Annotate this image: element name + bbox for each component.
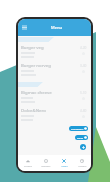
button[interactable]: Menu <box>55 155 73 171</box>
staticText: Bigmac cheese <box>21 89 52 95</box>
staticText: 3.40 <box>80 64 87 68</box>
staticText: 4.80 <box>80 109 87 113</box>
staticText: ITEM <box>77 136 84 139</box>
button[interactable]: CATEGORY <box>69 126 88 131</box>
button[interactable]: Navigation menu <box>20 23 29 32</box>
button[interactable]: Delivery <box>37 155 55 171</box>
staticText: Menu <box>61 164 68 167</box>
staticText: Dolce&Nero <box>21 107 46 113</box>
button[interactable]: Burger norveg <box>18 62 91 76</box>
staticText: Burger norveg <box>21 62 51 68</box>
button[interactable]: ITEM <box>75 135 88 140</box>
staticText: Menu <box>51 25 62 30</box>
staticText: Burger veg <box>21 44 44 50</box>
button[interactable]: History <box>73 155 91 171</box>
staticText: History <box>78 164 87 167</box>
staticText: CATEGORY <box>71 127 84 130</box>
staticText: Orders <box>24 164 32 167</box>
button[interactable]: Dolce&Nero <box>18 107 91 121</box>
button[interactable]: Burger veg <box>18 44 91 58</box>
staticText: 5.10 <box>80 91 87 95</box>
button[interactable]: Bigmac cheese <box>18 89 91 103</box>
button[interactable]: Add <box>80 144 86 150</box>
button[interactable]: Orders <box>18 155 37 171</box>
staticText: Delivery <box>41 164 51 167</box>
staticText: 4.20 <box>80 46 87 50</box>
